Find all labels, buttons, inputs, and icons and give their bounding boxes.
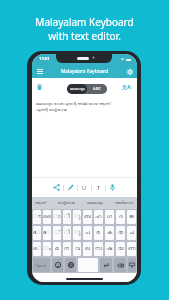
staticText: ഗ bbox=[107, 214, 113, 220]
button[interactable]: ഹ bbox=[94, 210, 103, 224]
button[interactable]: ജ bbox=[127, 210, 136, 224]
staticText: 文A bbox=[122, 83, 131, 90]
staticText: മാതൃഭാഷ bbox=[58, 201, 75, 205]
button[interactable]: ൂ bbox=[73, 210, 81, 224]
button[interactable] bbox=[128, 258, 136, 272]
button[interactable]: ോ bbox=[33, 226, 41, 240]
staticText: T bbox=[97, 184, 101, 192]
button[interactable]: ?൧൨൩ bbox=[33, 258, 50, 272]
button[interactable]: ൈ bbox=[43, 210, 51, 224]
staticText: സ bbox=[95, 246, 103, 252]
button[interactable]: T bbox=[92, 178, 105, 197]
staticText: മലയാളം ഭാഷ എന്റെ അമ്മ ഭാഷ ആണ് bbox=[36, 101, 111, 107]
staticText: U bbox=[82, 184, 87, 192]
button[interactable]: മലയാളം bbox=[85, 201, 106, 205]
button[interactable]: സ bbox=[94, 242, 103, 256]
staticText: ല bbox=[85, 246, 90, 252]
staticText: ു bbox=[74, 230, 81, 236]
staticText: 11:51 bbox=[39, 56, 50, 62]
button[interactable]: ല bbox=[83, 242, 92, 256]
button[interactable]: Translate bbox=[121, 81, 132, 92]
staticText: മ bbox=[55, 246, 59, 252]
staticText: ച bbox=[129, 230, 134, 236]
button[interactable] bbox=[100, 258, 112, 272]
staticText: അഭിമാനം bbox=[115, 201, 134, 205]
button[interactable]: ര bbox=[94, 226, 103, 240]
staticText: ൂ bbox=[74, 214, 81, 220]
staticText: ഷ bbox=[106, 246, 113, 252]
staticText: Malayalam Keyboard bbox=[35, 15, 134, 29]
button[interactable]: ് bbox=[53, 226, 61, 240]
staticText: ണ bbox=[128, 246, 136, 252]
staticText: ൈ bbox=[43, 214, 51, 220]
button[interactable]: ണ bbox=[127, 242, 136, 256]
button[interactable]: ൊ bbox=[33, 242, 41, 256]
staticText: with text editor. bbox=[48, 29, 121, 43]
button[interactable]: Share bbox=[50, 178, 63, 197]
staticText: ആണ് bbox=[35, 201, 47, 205]
button[interactable]: യ bbox=[116, 242, 125, 256]
staticText: േ bbox=[43, 230, 51, 236]
button[interactable]: ഗ bbox=[105, 210, 114, 224]
button[interactable]: വ bbox=[73, 242, 81, 256]
staticText: ീ bbox=[64, 214, 70, 220]
staticText: എന്റെ മാതൃഭാഷ bbox=[36, 107, 67, 113]
button[interactable]: Settings bbox=[124, 66, 135, 77]
staticText: ോ bbox=[33, 230, 41, 236]
button[interactable]: ീ bbox=[63, 210, 71, 224]
staticText: ി bbox=[64, 230, 70, 236]
button[interactable]: ABC bbox=[87, 84, 107, 94]
button[interactable]: ൗ bbox=[33, 210, 41, 224]
button[interactable] bbox=[52, 258, 63, 272]
button[interactable] bbox=[114, 258, 126, 272]
staticText: പ bbox=[85, 230, 90, 236]
button[interactable]: Edit bbox=[64, 178, 77, 197]
button[interactable]: Text colour bbox=[106, 178, 119, 197]
staticText: ര bbox=[96, 230, 101, 236]
button[interactable]: ത bbox=[116, 226, 125, 240]
staticText: മലയാളം bbox=[70, 87, 85, 91]
button[interactable]: ം bbox=[43, 242, 51, 256]
staticText: ത bbox=[118, 230, 124, 236]
staticText: മലയാളം bbox=[87, 201, 104, 205]
staticText: ാ bbox=[53, 214, 61, 220]
staticText: ജ bbox=[129, 214, 134, 220]
button[interactable] bbox=[65, 258, 76, 272]
button[interactable]: മ bbox=[53, 242, 61, 256]
button[interactable]: അഭിമാനം bbox=[113, 201, 136, 205]
button[interactable]: Clear text bbox=[34, 81, 45, 92]
staticText: ൊ bbox=[33, 246, 41, 252]
staticText: ക bbox=[107, 230, 113, 236]
button[interactable]: ആണ് bbox=[33, 201, 49, 205]
button[interactable]: ാ bbox=[53, 210, 61, 224]
staticText: ?൧൨൩ bbox=[36, 263, 47, 268]
button[interactable]: U bbox=[78, 178, 91, 197]
button[interactable]: മലയാളം bbox=[67, 84, 87, 94]
button[interactable]: ക bbox=[105, 226, 114, 240]
button[interactable]: Menu bbox=[34, 66, 45, 77]
staticText: ം bbox=[44, 246, 51, 252]
staticText: വ bbox=[75, 246, 80, 252]
staticText: ൗ bbox=[33, 214, 41, 220]
button[interactable]: പ bbox=[83, 226, 92, 240]
button[interactable]: ദ bbox=[116, 210, 125, 224]
staticText: ബ bbox=[84, 214, 91, 220]
button[interactable]: ച bbox=[127, 226, 136, 240]
staticText: Malayalam Keyboard bbox=[61, 68, 109, 75]
button[interactable]: ു bbox=[73, 226, 81, 240]
button[interactable]: ി bbox=[63, 226, 71, 240]
staticText: ന bbox=[64, 246, 70, 252]
button[interactable]: ന bbox=[63, 242, 71, 256]
staticText: ABC bbox=[93, 86, 102, 92]
button[interactable]: ഷ bbox=[105, 242, 114, 256]
button[interactable]: േ bbox=[43, 226, 51, 240]
button[interactable]: ബ bbox=[83, 210, 92, 224]
staticText: ദ bbox=[119, 214, 123, 220]
staticText: ഹ bbox=[95, 214, 102, 220]
staticText: യ bbox=[118, 246, 124, 252]
staticText: ് bbox=[55, 230, 60, 236]
button[interactable]: മാതൃഭാഷ bbox=[56, 201, 77, 205]
